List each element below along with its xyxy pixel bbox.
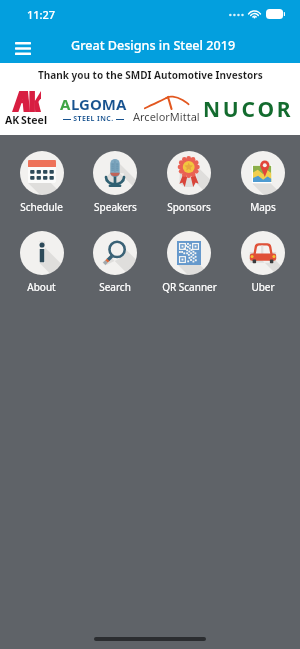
staticText: Search [99,280,131,294]
staticText: NUCOR [203,95,294,124]
button[interactable]: Maps [226,151,300,214]
button[interactable]: Uber [226,231,300,294]
staticText: 11:27 [27,7,56,22]
button[interactable]: About [5,231,78,294]
staticText: QR Scanner [162,280,217,294]
staticText: LGOMA [71,94,127,114]
button[interactable]: Schedule [5,151,78,214]
button[interactable]: Sponsors [152,151,226,214]
staticText: STEEL INC. [71,114,116,124]
staticText: Uber [251,280,275,294]
staticText: About [27,280,56,294]
button[interactable]: Speakers [78,151,152,214]
staticText: Steel [21,113,48,127]
staticText: Schedule [20,200,63,214]
staticText: ArcelorMittal [133,109,200,124]
staticText: Thank you to the SMDI Automotive Investo… [38,68,263,82]
staticText: Great Designs in Steel 2019 [71,37,236,54]
staticText: Maps [250,200,276,214]
staticText: AK [5,113,20,127]
staticText: Sponsors [167,200,211,214]
staticText: Speakers [94,200,137,214]
staticText: A [60,94,71,114]
button[interactable]: Open navigation menu [6,29,40,63]
button[interactable]: QR Scanner [152,231,226,294]
button[interactable]: Search [78,231,152,294]
